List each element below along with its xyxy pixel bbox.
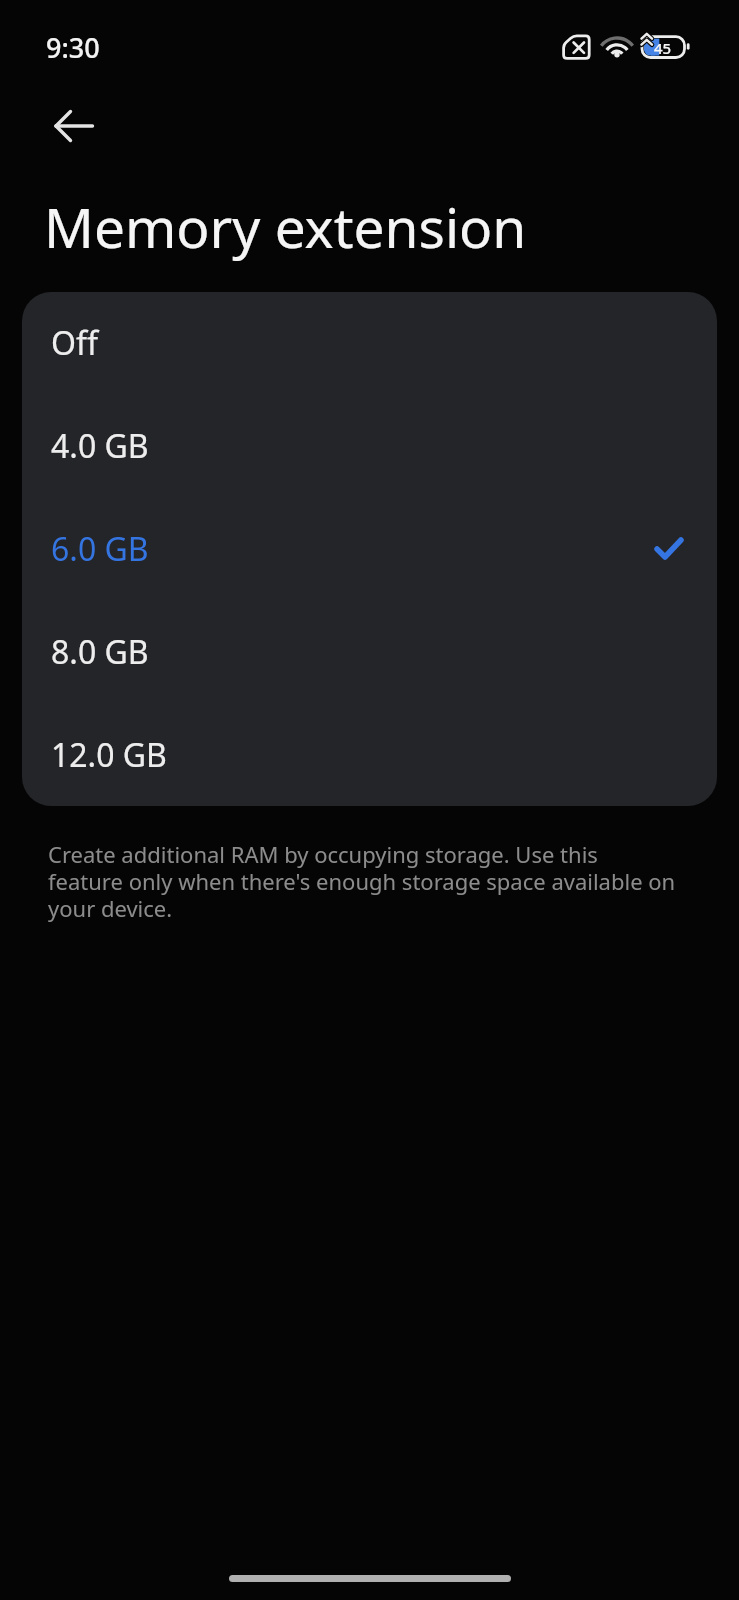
button[interactable]: 6.0 GB	[22, 497, 717, 600]
staticText: 12.0 GB	[51, 733, 167, 777]
button[interactable]: 12.0 GB	[22, 703, 717, 806]
staticText: 6.0 GB	[51, 527, 149, 571]
staticText: 8.0 GB	[51, 630, 149, 674]
staticText: 4.0 GB	[51, 424, 149, 468]
button[interactable]: 4.0 GB	[22, 394, 717, 497]
button[interactable]: 8.0 GB	[22, 600, 717, 703]
staticText: Off	[51, 321, 99, 365]
staticText: Memory extension	[44, 189, 527, 264]
staticText: Create additional RAM by occupying stora…	[48, 839, 676, 923]
button[interactable]	[50, 102, 98, 150]
staticText: 9:30	[46, 29, 100, 66]
button[interactable]: Off	[22, 292, 717, 394]
staticText: 45	[654, 38, 672, 58]
